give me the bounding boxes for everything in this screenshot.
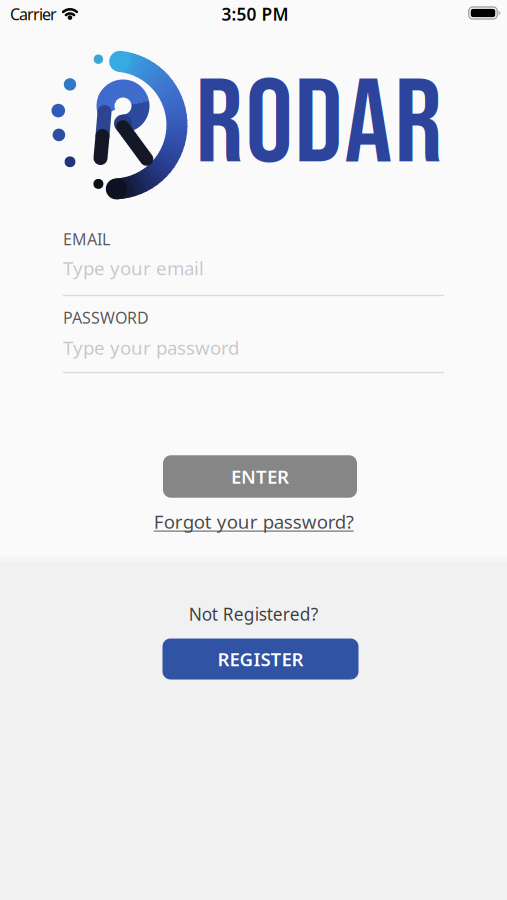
button[interactable]: Forgot your password?	[154, 509, 354, 534]
button[interactable]: REGISTER	[162, 638, 358, 679]
button[interactable]: ENTER	[163, 455, 357, 498]
staticText: Type your email	[63, 256, 204, 280]
staticText: Type your password	[63, 335, 239, 360]
staticText: Carrier	[10, 3, 57, 25]
staticText: RODAR	[195, 55, 442, 197]
staticText: 3:50 PM	[221, 2, 288, 25]
staticText: EMAIL	[63, 228, 110, 250]
staticText: PASSWORD	[63, 307, 149, 328]
staticText: Not Registered?	[189, 602, 319, 625]
staticText: ENTER	[231, 464, 289, 489]
staticText: Forgot your password?	[154, 509, 354, 534]
staticText: REGISTER	[217, 647, 303, 671]
